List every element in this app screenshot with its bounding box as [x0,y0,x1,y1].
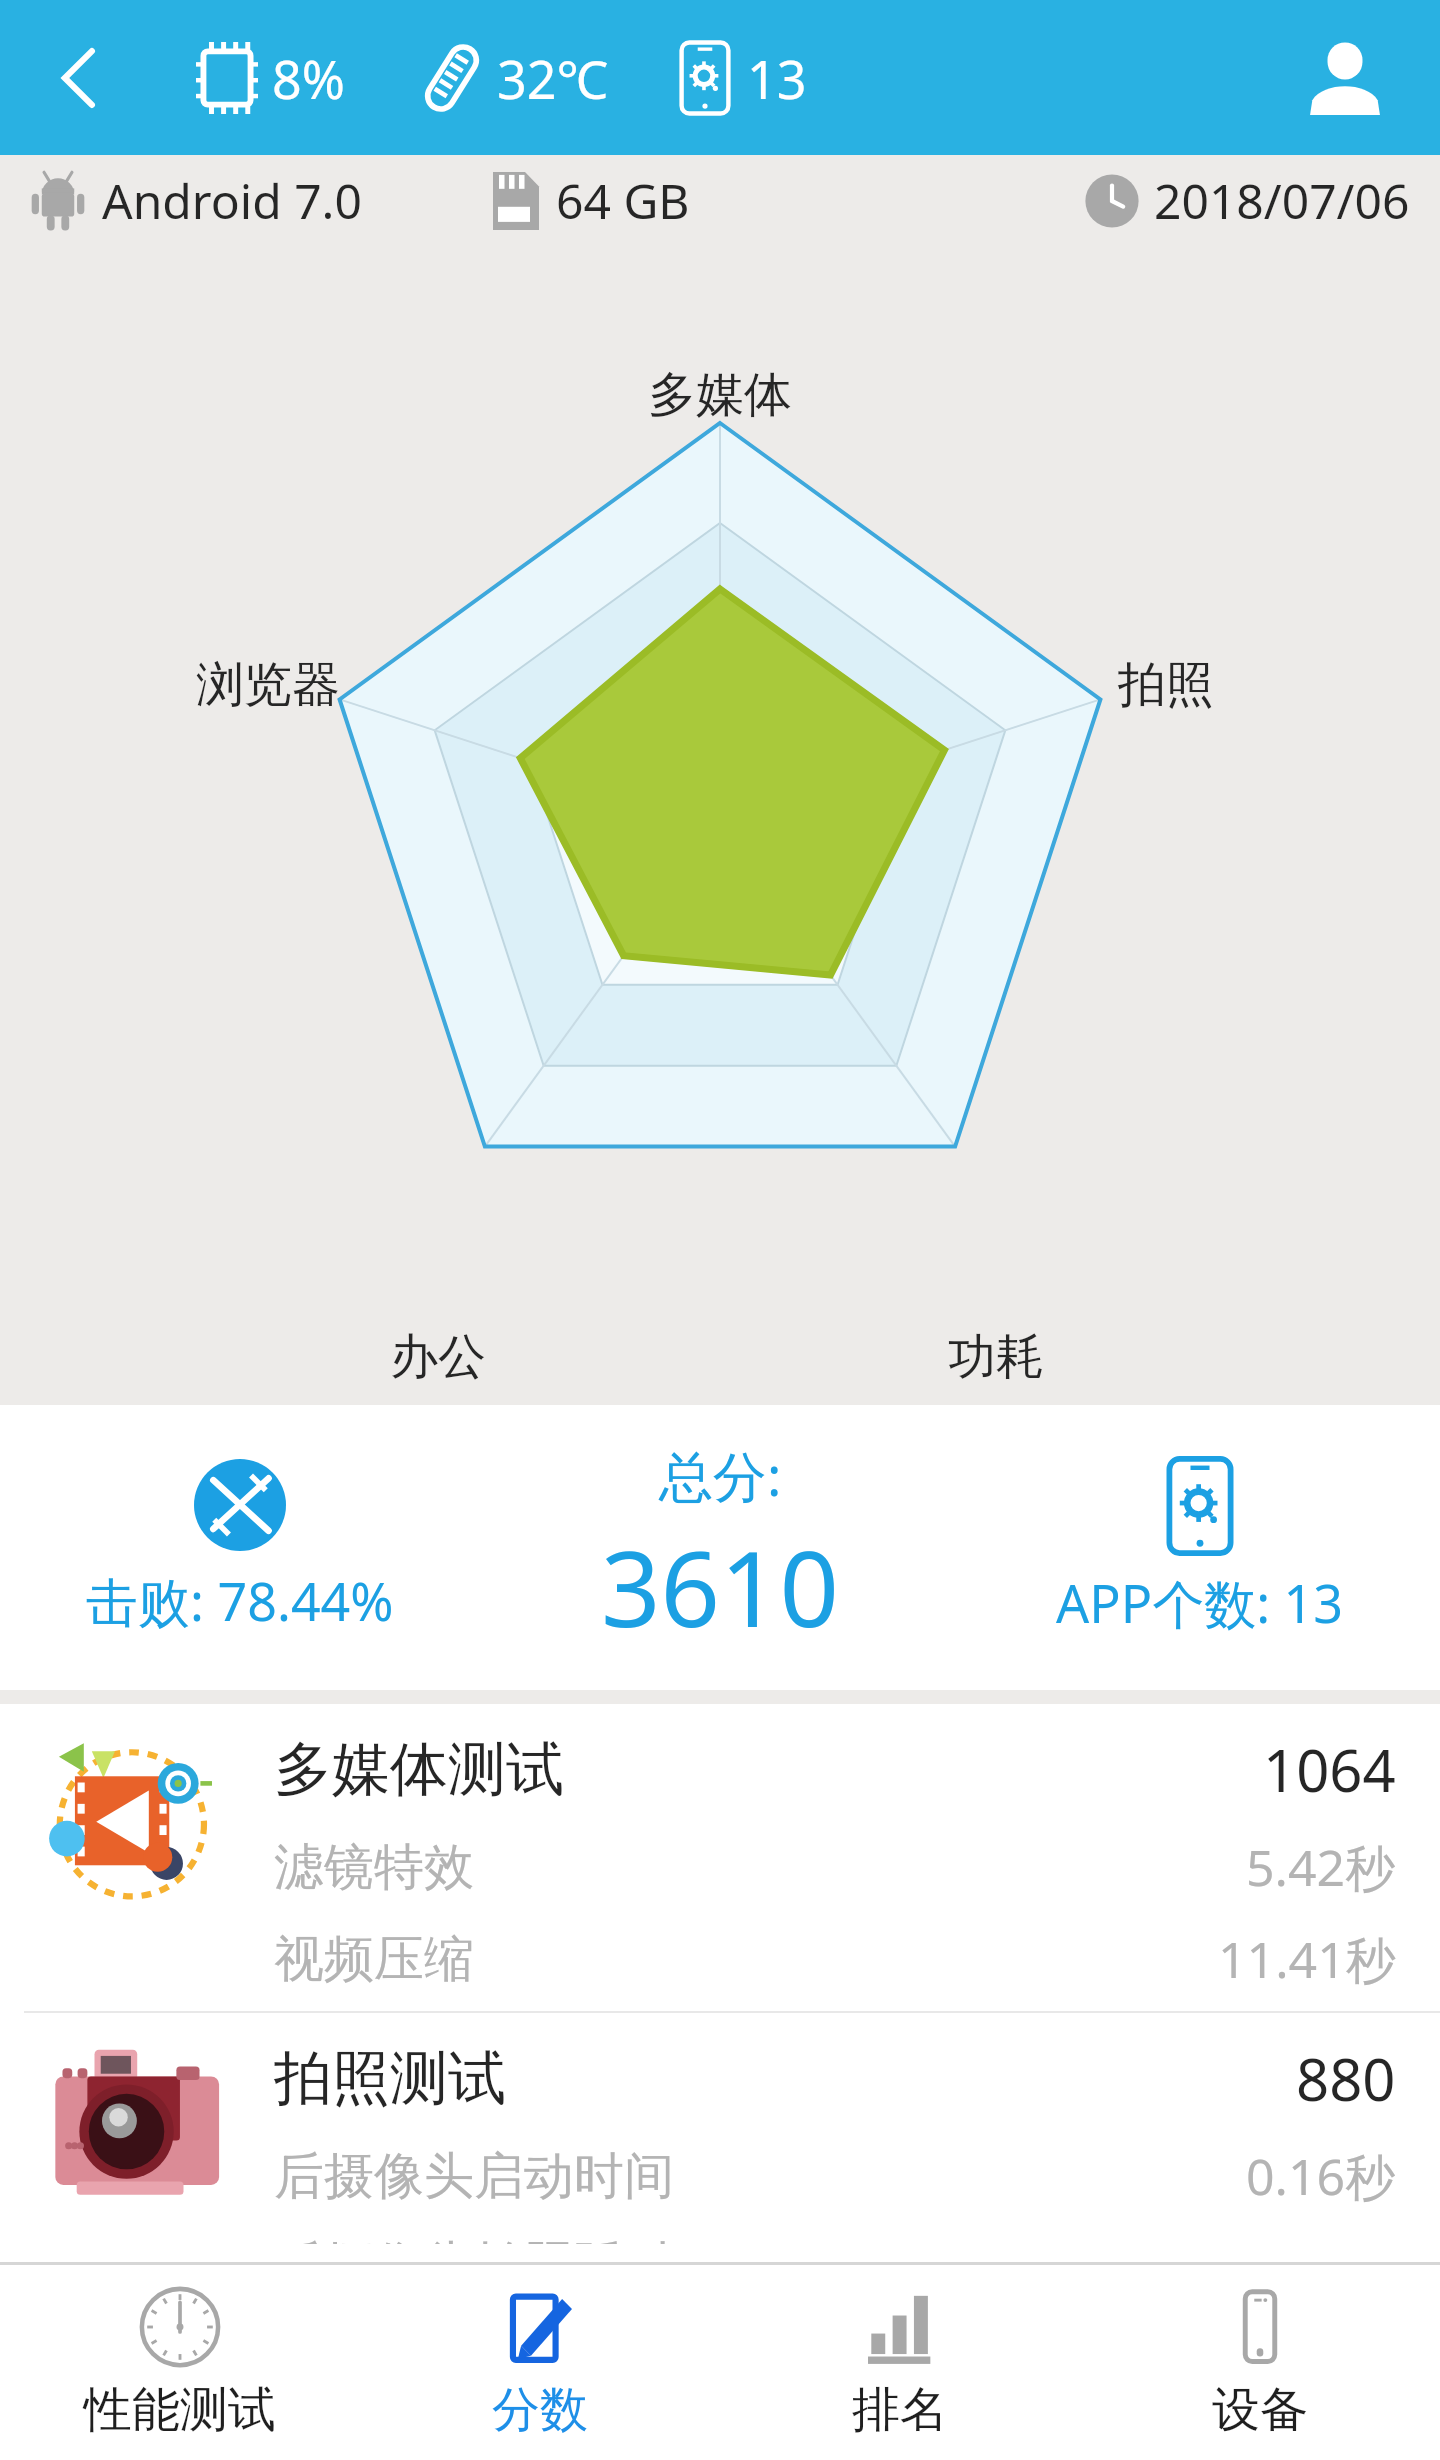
staticText: 3610 [601,1516,839,1658]
staticText: 击败: 78.44% [86,1565,394,1636]
staticText: 滤镜特效 [274,1836,1246,1899]
staticText: 0.16秒 [1246,2142,1396,2210]
staticText: 后摄像头启动时间 [274,2145,1246,2208]
button[interactable]: APP个数: 13 [960,1405,1440,1690]
staticText: 5.42秒 [1246,1833,1396,1901]
staticText: 2018/07/06 [1154,168,1410,233]
staticText: 64 GB [556,168,690,233]
staticText: APP个数: 13 [1056,1567,1344,1638]
button[interactable]: 性能测试 [0,2265,360,2460]
staticText: 后摄像头拍照延时 [274,2234,1246,2244]
button[interactable]: Profile [1286,19,1404,137]
staticText: 拍照 [1118,655,1214,715]
staticText: 8% [272,43,345,114]
staticText: 浏览器 [196,655,340,715]
button[interactable]: 排名 [720,2265,1080,2460]
staticText: 设备 [1212,2380,1308,2440]
button[interactable]: Back [18,22,130,134]
staticText: 多媒体 [648,365,792,425]
button[interactable]: 设备 [1080,2265,1440,2460]
staticText: 视频压缩 [274,1928,1218,1991]
staticText: 功耗 [948,1327,1044,1387]
staticText: 13 [747,43,807,114]
staticText: 总分: [659,1438,782,1512]
staticText: Android 7.0 [102,168,362,233]
staticText: 排名 [852,2380,948,2440]
staticText: 11.41秒 [1218,1925,1396,1993]
staticText: 32℃ [497,43,609,114]
staticText: 性能测试 [84,2380,276,2440]
staticText: 多媒体测试 [274,1733,1263,1806]
staticText: 分数 [492,2380,588,2440]
button[interactable]: 击败: 78.44% [0,1405,480,1690]
staticText: 880 [1296,2039,1396,2118]
button[interactable]: 分数 [360,2265,720,2460]
button[interactable]: 多媒体测试 [0,1704,1440,2011]
button[interactable]: 拍照测试 [0,2013,1440,2262]
staticText: 办公 [390,1327,486,1387]
button[interactable]: 总分: [480,1405,960,1690]
staticText: 拍照测试 [274,2042,1296,2115]
staticText: 1064 [1263,1730,1396,1809]
